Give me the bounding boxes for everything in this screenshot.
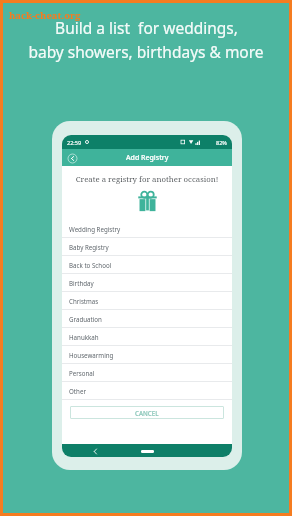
button[interactable]: Hanukkah	[62, 328, 232, 346]
staticText: Graduation	[69, 315, 102, 323]
button[interactable]: Wedding Registry	[62, 220, 232, 238]
button[interactable]: Other	[62, 382, 232, 400]
staticText: 82%	[216, 139, 227, 146]
staticText: hack-cheat.org	[9, 9, 81, 22]
staticText: Create a registry for another occasion!	[62, 174, 232, 185]
button[interactable]: Personal	[62, 364, 232, 382]
button[interactable]: Birthday	[62, 274, 232, 292]
button[interactable]: Baby Registry	[62, 238, 232, 256]
button[interactable]: Back	[66, 152, 78, 164]
button[interactable]: CANCEL	[70, 406, 224, 419]
staticText: Back to School	[69, 261, 112, 269]
button[interactable]: Home	[139, 447, 155, 455]
staticText: Wedding Registry	[69, 225, 121, 233]
staticText: Personal	[69, 369, 95, 377]
button[interactable]: Back	[90, 446, 100, 456]
staticText: Birthday	[69, 279, 94, 287]
staticText: Other	[69, 387, 86, 395]
staticText: Baby Registry	[69, 243, 109, 251]
staticText: Add Registry	[126, 153, 169, 163]
staticText: Hanukkah	[69, 333, 99, 341]
button[interactable]: Christmas	[62, 292, 232, 310]
staticText: 22:59	[67, 139, 82, 146]
staticText: baby showers, birthdays & more	[28, 41, 264, 62]
staticText: CANCEL	[135, 409, 159, 417]
staticText: Build a list for weddings,	[55, 17, 238, 38]
button[interactable]: Housewarming	[62, 346, 232, 364]
staticText: Christmas	[69, 297, 99, 305]
staticText: Housewarming	[69, 351, 114, 359]
button[interactable]: Back to School	[62, 256, 232, 274]
button[interactable]: Graduation	[62, 310, 232, 328]
